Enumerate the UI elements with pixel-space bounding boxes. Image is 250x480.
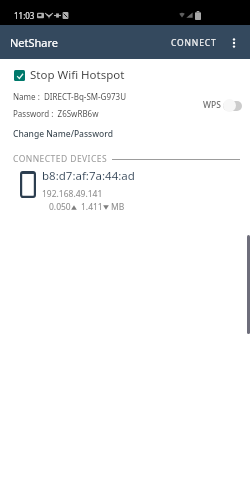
staticText: Password : Z6SwRB6w [13, 108, 99, 119]
button[interactable]: More options [222, 31, 246, 55]
staticText: b8:d7:af:7a:44:ad [42, 168, 135, 184]
staticText: Stop Wifi Hotspot [30, 67, 125, 83]
staticText: 11:03 [14, 10, 35, 21]
staticText: NetShare [10, 35, 59, 50]
staticText: 0.050 [49, 201, 71, 213]
button[interactable]: Change Name/Password [0, 128, 113, 140]
staticText: CONNECTED DEVICES [13, 153, 108, 165]
button[interactable]: Stop Wifi Hotspot [0, 67, 250, 83]
staticText: MB [111, 201, 125, 213]
staticText: Name : DIRECT-Bq-SM-G973U [13, 91, 126, 102]
button[interactable]: CONNECT [163, 30, 220, 56]
staticText: WPS [203, 99, 221, 111]
button[interactable]: b8:d7:af:7a:44:ad [0, 168, 250, 213]
staticText: Change Name/Password [13, 128, 113, 140]
button[interactable]: WPS toggle [223, 99, 242, 112]
staticText: 192.168.49.141 [42, 188, 103, 200]
staticText: CONNECT [171, 37, 217, 49]
staticText: 1.411 [81, 201, 103, 213]
